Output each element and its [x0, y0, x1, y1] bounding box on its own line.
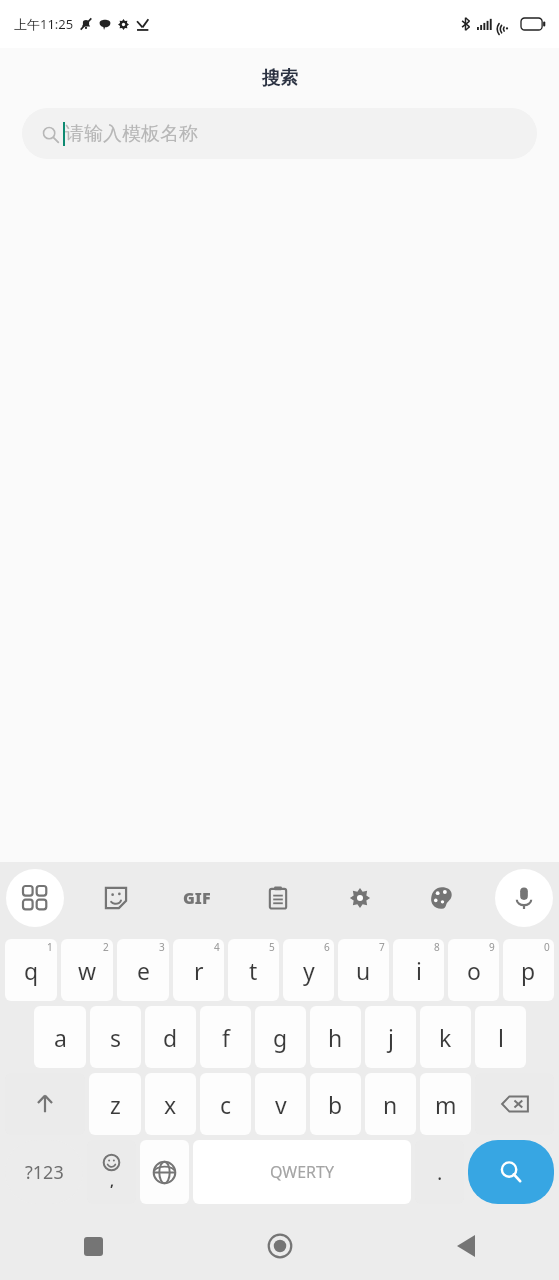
- button[interactable]: Stickers: [87, 869, 145, 927]
- staticText: QWERTY: [270, 1161, 335, 1183]
- staticText: p: [521, 955, 536, 986]
- button[interactable]: Voice input: [495, 869, 553, 927]
- staticText: w: [78, 955, 97, 986]
- button[interactable]: j: [365, 1006, 416, 1068]
- staticText: GIF: [183, 887, 211, 909]
- button[interactable]: QWERTY: [193, 1140, 411, 1204]
- button[interactable]: Search: [468, 1140, 554, 1204]
- staticText: y: [303, 955, 315, 986]
- button[interactable]: g: [255, 1006, 306, 1068]
- staticText: s: [110, 1022, 122, 1053]
- staticText: 7: [379, 940, 385, 954]
- button[interactable]: 请输入模板名称: [22, 108, 537, 159]
- button[interactable]: n: [365, 1073, 416, 1135]
- button[interactable]: Recents: [0, 1212, 187, 1280]
- button[interactable]: Apps: [6, 869, 64, 927]
- button[interactable]: h: [310, 1006, 361, 1068]
- staticText: m: [435, 1089, 457, 1120]
- staticText: ,: [110, 1171, 114, 1190]
- staticText: 上午11:25: [14, 15, 74, 33]
- staticText: ?123: [25, 1160, 64, 1185]
- staticText: 2: [103, 940, 109, 954]
- staticText: c: [220, 1089, 232, 1120]
- button[interactable]: y: [283, 939, 334, 1001]
- button[interactable]: t: [228, 939, 279, 1001]
- staticText: 0: [544, 940, 550, 954]
- staticText: u: [356, 955, 371, 986]
- button[interactable]: Clipboard: [249, 869, 307, 927]
- staticText: n: [383, 1089, 398, 1120]
- staticText: 1: [47, 940, 53, 954]
- button[interactable]: Shift: [5, 1073, 85, 1135]
- staticText: k: [439, 1022, 452, 1053]
- staticText: r: [194, 955, 204, 986]
- button[interactable]: l: [475, 1006, 526, 1068]
- staticText: x: [164, 1089, 177, 1120]
- staticText: b: [328, 1089, 343, 1120]
- button[interactable]: v: [255, 1073, 306, 1135]
- staticText: o: [467, 955, 481, 986]
- staticText: q: [24, 955, 39, 986]
- button[interactable]: Home: [187, 1212, 373, 1280]
- button[interactable]: Backspace: [475, 1073, 554, 1135]
- staticText: 9: [489, 940, 495, 954]
- button[interactable]: e: [117, 939, 169, 1001]
- button[interactable]: GIF: [168, 869, 226, 927]
- button[interactable]: .: [415, 1140, 464, 1204]
- staticText: 请输入模板名称: [65, 122, 198, 146]
- button[interactable]: r: [173, 939, 224, 1001]
- button[interactable]: Back: [373, 1212, 559, 1280]
- button[interactable]: Emoji: [87, 1140, 136, 1204]
- button[interactable]: Settings: [331, 869, 389, 927]
- staticText: 3: [159, 940, 165, 954]
- button[interactable]: k: [420, 1006, 471, 1068]
- button[interactable]: p: [503, 939, 554, 1001]
- staticText: 4: [214, 940, 220, 954]
- button[interactable]: z: [89, 1073, 141, 1135]
- button[interactable]: u: [338, 939, 389, 1001]
- staticText: v: [275, 1089, 287, 1120]
- button[interactable]: i: [393, 939, 444, 1001]
- button[interactable]: x: [145, 1073, 196, 1135]
- button[interactable]: a: [34, 1006, 86, 1068]
- staticText: g: [273, 1022, 288, 1053]
- button[interactable]: c: [200, 1073, 251, 1135]
- button[interactable]: b: [310, 1073, 361, 1135]
- button[interactable]: d: [145, 1006, 196, 1068]
- staticText: 8: [434, 940, 440, 954]
- staticText: j: [388, 1022, 394, 1053]
- button[interactable]: ?123: [5, 1140, 83, 1204]
- button[interactable]: w: [61, 939, 113, 1001]
- staticText: f: [222, 1022, 230, 1053]
- button[interactable]: m: [420, 1073, 471, 1135]
- staticText: z: [110, 1089, 121, 1120]
- staticText: e: [137, 955, 150, 986]
- staticText: t: [249, 955, 258, 986]
- button[interactable]: s: [90, 1006, 141, 1068]
- button[interactable]: Theme: [413, 869, 471, 927]
- staticText: 搜索: [262, 67, 298, 90]
- staticText: 5: [269, 940, 275, 954]
- button[interactable]: q: [5, 939, 57, 1001]
- staticText: i: [416, 955, 422, 986]
- staticText: h: [328, 1022, 343, 1053]
- button[interactable]: o: [448, 939, 499, 1001]
- button[interactable]: f: [200, 1006, 251, 1068]
- staticText: a: [54, 1022, 67, 1053]
- button[interactable]: Change language: [140, 1140, 189, 1204]
- staticText: d: [163, 1022, 178, 1053]
- staticText: 6: [324, 940, 330, 954]
- staticText: .: [437, 1159, 443, 1186]
- staticText: l: [498, 1022, 504, 1053]
